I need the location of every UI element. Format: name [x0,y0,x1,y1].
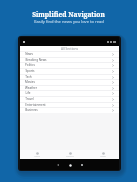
button[interactable]: All Sections [20,46,119,51]
button[interactable]: Sections [53,150,86,159]
button[interactable]: Movies [20,79,119,85]
button[interactable]: Breaking News [20,57,119,63]
button[interactable]: Life [20,90,119,96]
button[interactable]: Politics [20,62,119,68]
staticText: Tech [25,75,32,79]
staticText: Saved [100,155,106,158]
staticText: Sports [25,69,35,73]
staticText: Movies [25,80,35,84]
button[interactable]: Travel [20,96,119,102]
staticText: Easily find the news you love to read [34,19,104,25]
button[interactable]: Sports [20,68,119,74]
button[interactable]: Business [20,107,119,113]
staticText: Business [25,108,38,112]
staticText: Home [34,155,40,158]
button[interactable]: Tech [20,74,119,80]
button[interactable]: Back [55,162,61,168]
staticText: News [25,52,33,56]
button[interactable]: Home [67,162,73,168]
staticText: All Sections [61,47,78,51]
staticText: Weather [25,86,37,90]
staticText: Sections [66,155,74,158]
button[interactable]: Recent apps [79,162,85,168]
button[interactable]: Weather [20,85,119,91]
staticText: Simplified Navigation [32,10,105,19]
staticText: Entertainment [25,103,46,107]
staticText: Life [25,91,31,95]
staticText: Breaking News [25,58,47,62]
button[interactable]: Saved [86,150,119,159]
staticText: Politics [25,63,35,67]
button[interactable]: Entertainment [20,102,119,108]
button[interactable]: News [20,51,119,57]
staticText: Travel [25,97,34,101]
button[interactable]: Home [20,150,53,159]
